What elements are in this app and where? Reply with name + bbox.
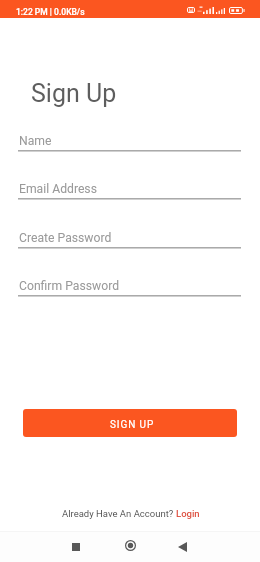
staticText: SIGN UP (110, 419, 155, 431)
staticText: Sign Up (31, 79, 117, 108)
button[interactable]: Login (176, 508, 200, 519)
staticText: Email Address (19, 182, 97, 196)
staticText: Already Have An Account? (62, 508, 176, 519)
staticText: Name (19, 134, 52, 148)
staticText: Confirm Password (19, 279, 120, 293)
button[interactable]: Back (168, 532, 197, 561)
staticText: 1:22 PM | 0.0KB/s (16, 7, 85, 17)
button[interactable]: Recent apps (61, 532, 90, 561)
staticText: Create Password (19, 231, 112, 245)
button[interactable]: SIGN UP (23, 409, 237, 437)
button[interactable]: Home (116, 531, 145, 560)
